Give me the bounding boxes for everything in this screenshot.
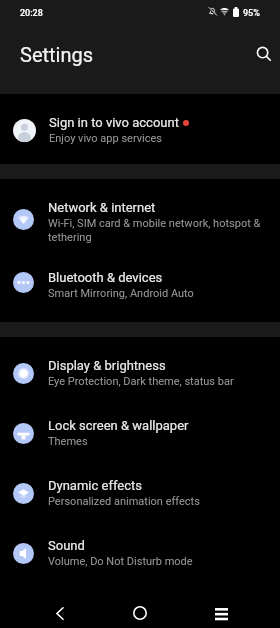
staticText: Personalized animation effects [48, 495, 200, 508]
button[interactable]: Display & brightness [0, 343, 280, 403]
button[interactable]: Dynamic effects [0, 463, 280, 523]
staticText: Lock screen & wallpaper [48, 418, 189, 433]
staticText: 95% [243, 8, 260, 19]
staticText: Enjoy vivo app services [49, 132, 163, 145]
staticText: Eye Protection, Dark theme, status bar [48, 375, 234, 388]
staticText: Display & brightness [48, 358, 166, 373]
button[interactable]: Sound [0, 523, 280, 583]
button[interactable]: Lock screen & wallpaper [0, 403, 280, 463]
button[interactable]: Search [250, 40, 278, 68]
staticText: Themes [48, 435, 88, 448]
button[interactable]: Network & internet [0, 187, 280, 257]
staticText: Smart Mirroring, Android Auto [48, 287, 194, 300]
button[interactable]: Home [114, 595, 166, 628]
button[interactable]: Bluetooth & devices [0, 257, 280, 313]
staticText: Volume, Do Not Disturb mode [48, 555, 193, 568]
staticText: Wi-Fi, SIM card & mobile network, hotspo… [48, 217, 263, 244]
staticText: Dynamic effects [48, 478, 142, 493]
button[interactable]: Sign in to vivo account [0, 94, 280, 163]
button[interactable]: Back [34, 595, 86, 628]
button[interactable]: Recent apps [195, 595, 247, 628]
staticText: Network & internet [48, 200, 156, 215]
staticText: Sound [48, 538, 85, 553]
staticText: Settings [20, 43, 94, 66]
staticText: 20:28 [20, 8, 43, 19]
staticText: Sign in to vivo account [49, 115, 179, 130]
staticText: Bluetooth & devices [48, 270, 163, 285]
